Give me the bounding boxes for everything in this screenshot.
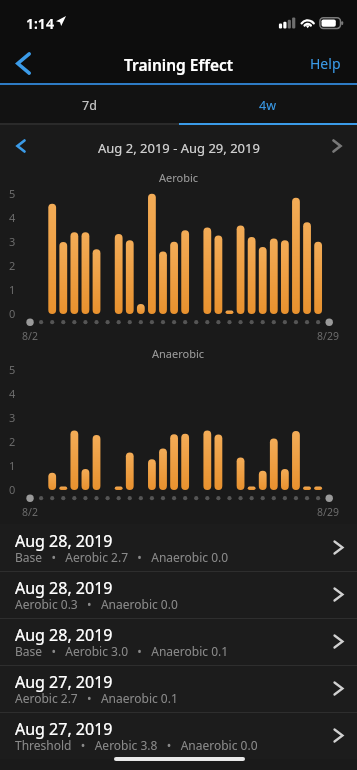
staticText: Aug 27, 2019 xyxy=(15,671,113,693)
button[interactable]: Aug 28, 2019 xyxy=(0,524,357,571)
button[interactable]: 4w xyxy=(178,85,357,125)
staticText: 1:14 xyxy=(26,14,54,33)
staticText: Aug 27, 2019 xyxy=(15,718,113,740)
staticText: 0 xyxy=(9,482,16,497)
button[interactable]: Help xyxy=(292,44,357,83)
staticText: Aerobic 0.3 • Anaerobic 0.0 xyxy=(15,596,178,612)
staticText: Threshold • Aerobic 3.8 • Anaerobic 0.0 xyxy=(15,737,258,753)
staticText: 5 xyxy=(9,362,16,377)
button[interactable]: Aug 28, 2019 xyxy=(0,571,357,618)
button[interactable]: Previous period xyxy=(0,127,41,164)
staticText: 7d xyxy=(82,97,97,114)
staticText: 4w xyxy=(259,97,276,114)
staticText: Help xyxy=(310,54,341,73)
staticText: 4 xyxy=(9,210,16,225)
staticText: Aug 2, 2019 - Aug 29, 2019 xyxy=(98,139,260,157)
staticText: Base • Aerobic 3.0 • Anaerobic 0.1 xyxy=(15,643,229,659)
staticText: 3 xyxy=(9,410,16,425)
staticText: 8/29 xyxy=(317,329,339,343)
button[interactable]: Aug 27, 2019 xyxy=(0,712,357,759)
staticText: Base • Aerobic 2.7 • Anaerobic 0.0 xyxy=(15,549,229,565)
button[interactable]: Aug 27, 2019 xyxy=(0,665,357,712)
staticText: Anaerobic xyxy=(152,346,205,361)
staticText: 2 xyxy=(9,258,16,273)
staticText: Aerobic xyxy=(159,170,199,185)
staticText: Training Effect xyxy=(124,54,234,75)
button[interactable]: Next period xyxy=(316,127,357,164)
staticText: 2 xyxy=(9,434,16,449)
staticText: Aug 28, 2019 xyxy=(15,577,113,599)
staticText: 8/2 xyxy=(22,329,38,343)
staticText: Aerobic 2.7 • Anaerobic 0.1 xyxy=(15,690,178,706)
staticText: 0 xyxy=(9,306,16,321)
button[interactable]: Back xyxy=(0,44,46,83)
staticText: 3 xyxy=(9,234,16,249)
button[interactable]: Aug 28, 2019 xyxy=(0,618,357,665)
staticText: Aug 28, 2019 xyxy=(15,624,113,646)
staticText: 8/29 xyxy=(317,505,339,519)
staticText: 1 xyxy=(9,458,16,473)
staticText: 1 xyxy=(9,282,16,297)
staticText: 8/2 xyxy=(22,505,38,519)
button[interactable]: 7d xyxy=(0,85,178,125)
staticText: Aug 28, 2019 xyxy=(15,530,113,552)
staticText: 5 xyxy=(9,186,16,201)
staticText: 4 xyxy=(9,386,16,401)
